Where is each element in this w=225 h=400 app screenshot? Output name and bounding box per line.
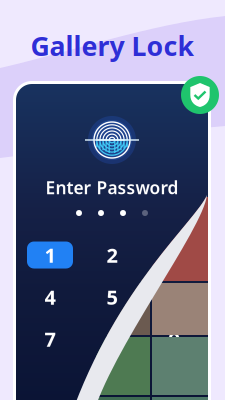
- staticText: 5: [106, 284, 117, 310]
- button[interactable]: 6: [143, 276, 205, 318]
- button[interactable]: 5: [81, 276, 143, 318]
- staticText: 2: [106, 242, 117, 268]
- button[interactable]: 2: [81, 234, 143, 276]
- staticText: 3: [168, 242, 179, 268]
- button[interactable]: Protected: [181, 76, 219, 114]
- button[interactable]: 3: [143, 234, 205, 276]
- staticText: 1: [44, 242, 55, 268]
- staticText: Enter Password: [45, 176, 178, 199]
- button[interactable]: 1: [19, 234, 81, 276]
- staticText: 4: [44, 284, 55, 310]
- button[interactable]: 9: [143, 318, 205, 360]
- button[interactable]: 4: [19, 276, 81, 318]
- staticText: 9: [168, 326, 179, 352]
- staticText: 7: [44, 326, 55, 352]
- button[interactable]: 7: [19, 318, 81, 360]
- staticText: 8: [106, 326, 117, 352]
- staticText: Gallery Lock: [30, 28, 194, 63]
- button[interactable]: 8: [81, 318, 143, 360]
